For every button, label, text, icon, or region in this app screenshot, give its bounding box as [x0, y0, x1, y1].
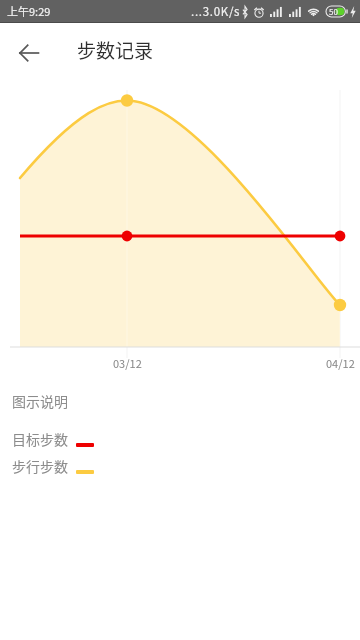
- staticText: 目标步数: [12, 429, 68, 449]
- button[interactable]: 步行步数: [0, 456, 360, 478]
- staticText: 50: [329, 6, 338, 17]
- staticText: 图示说明: [12, 391, 68, 411]
- staticText: 04/12: [326, 355, 355, 371]
- button[interactable]: 目标步数: [0, 429, 360, 451]
- button[interactable]: Back: [9, 33, 49, 73]
- staticText: 步数记录: [77, 36, 154, 64]
- staticText: 03/12: [113, 355, 142, 371]
- staticText: 步行步数: [12, 456, 68, 476]
- staticText: ...3.0K/s: [191, 3, 241, 20]
- staticText: 上午9:29: [7, 3, 51, 19]
